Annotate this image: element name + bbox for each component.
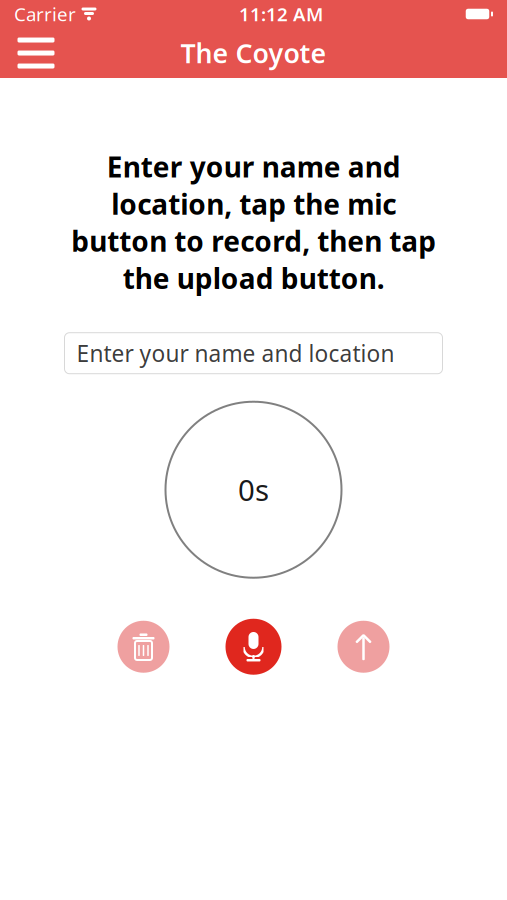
button[interactable]: Menu <box>8 31 64 75</box>
staticText: Enter your name and location, tap the mi… <box>71 148 436 297</box>
staticText: Enter your name and location <box>76 338 394 368</box>
button[interactable]: Delete recording <box>107 611 179 683</box>
button[interactable]: Record <box>217 611 289 683</box>
staticText: 11:12 AM <box>239 2 323 26</box>
button[interactable]: Enter your name and location <box>64 333 442 374</box>
staticText: 0s <box>238 470 269 509</box>
staticText: The Coyote <box>180 35 326 71</box>
button[interactable]: Upload <box>327 611 399 683</box>
staticText: Carrier <box>14 2 76 26</box>
